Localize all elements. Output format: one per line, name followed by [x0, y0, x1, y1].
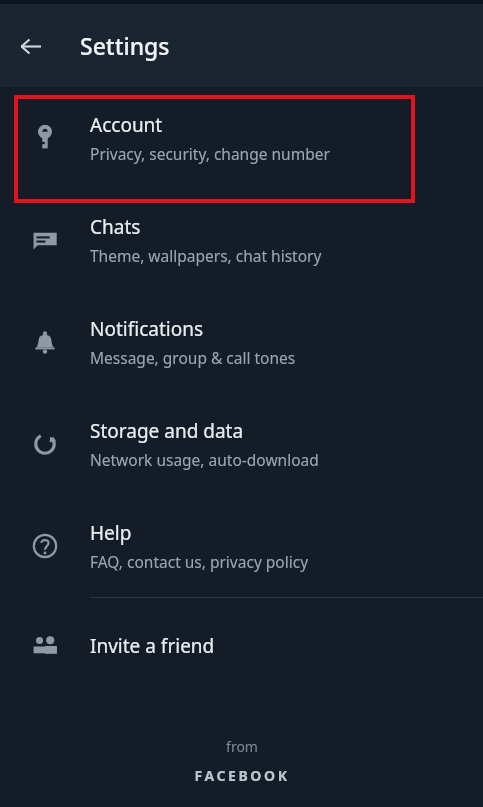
- staticText: Chats: [90, 214, 141, 240]
- staticText: FAQ, contact us, privacy policy: [90, 551, 309, 572]
- staticText: Message, group & call tones: [90, 347, 296, 368]
- button[interactable]: Storage and data: [0, 393, 483, 495]
- staticText: from: [226, 737, 258, 756]
- button[interactable]: Chats: [0, 189, 483, 291]
- button[interactable]: Back: [6, 22, 54, 70]
- staticText: Privacy, security, change number: [90, 143, 330, 164]
- button[interactable]: Help: [0, 495, 483, 597]
- button[interactable]: Notifications: [0, 291, 483, 393]
- staticText: Storage and data: [90, 418, 244, 444]
- button[interactable]: Invite a friend: [0, 598, 483, 694]
- staticText: Network usage, auto-download: [90, 449, 319, 470]
- staticText: FACEBOOK: [194, 766, 290, 785]
- staticText: Invite a friend: [90, 633, 215, 659]
- staticText: Theme, wallpapers, chat history: [90, 245, 322, 266]
- staticText: Account: [90, 112, 163, 138]
- staticText: Notifications: [90, 316, 204, 342]
- staticText: Help: [90, 520, 132, 546]
- button[interactable]: Account: [0, 87, 483, 189]
- staticText: Settings: [80, 30, 170, 61]
